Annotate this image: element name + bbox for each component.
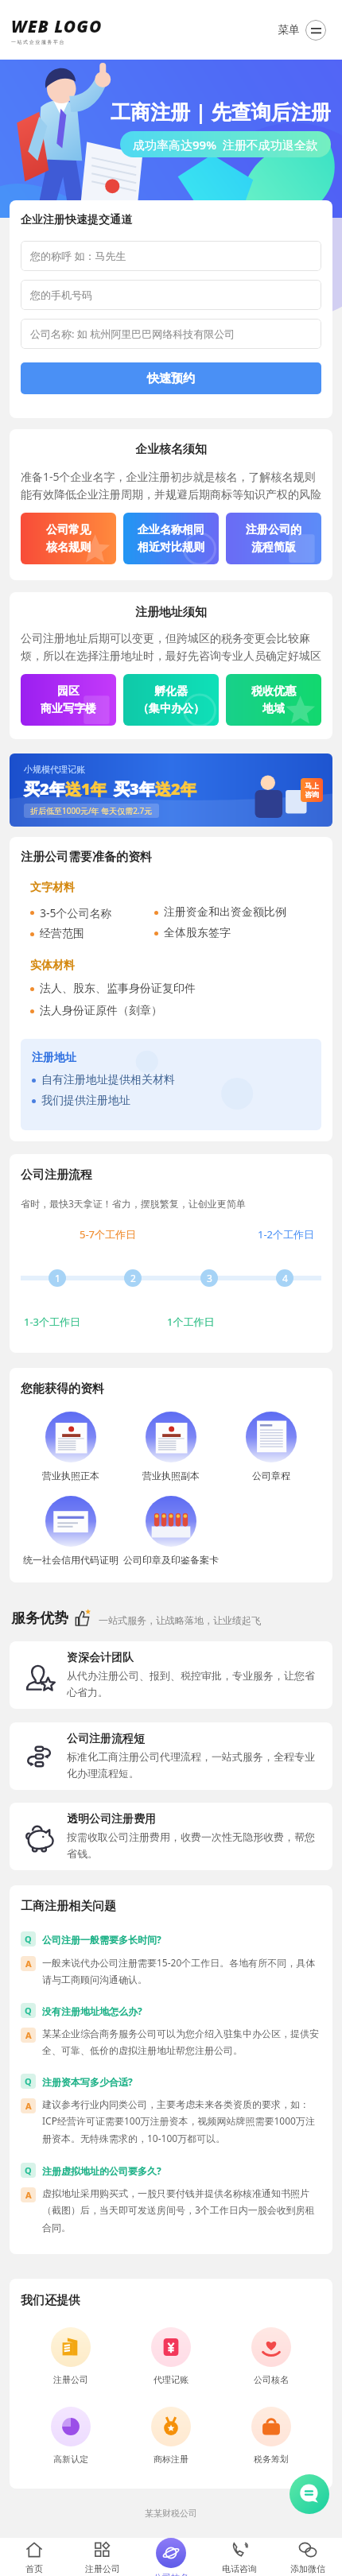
button[interactable]: 税收优惠: [226, 674, 321, 726]
staticText: 一 站 式 企 业 服 务 平 台: [11, 39, 64, 45]
staticText: 公司核名: [154, 2572, 188, 2576]
staticText: 企业核名须知: [135, 442, 207, 457]
button[interactable]: Q: [21, 2003, 321, 2018]
button[interactable]: 小规模代理记账: [10, 753, 332, 827]
staticText: 我们还提供: [21, 2293, 80, 2308]
staticText: 商标注册: [154, 2454, 188, 2465]
staticText: 1-3个工作日: [24, 1315, 81, 1329]
staticText: 从代办注册公司、报到、税控审批，专业服务，让您省心省力。: [67, 1669, 321, 1699]
button[interactable]: 电话咨询: [205, 2538, 274, 2576]
button[interactable]: 园区: [21, 674, 116, 726]
button[interactable]: Q: [21, 2074, 321, 2089]
staticText: 文字材料: [30, 881, 75, 895]
staticText: 公司常见: [46, 523, 91, 537]
button[interactable]: 在线咨询: [290, 2474, 329, 2514]
staticText: 3: [207, 1272, 212, 1284]
staticText: 没有注册地址地怎么办?: [42, 2005, 142, 2017]
button[interactable]: Q: [21, 2163, 321, 2178]
staticText: 首页: [25, 2563, 43, 2574]
staticText: A: [25, 2029, 32, 2041]
button[interactable]: 资深会计团队: [10, 1641, 332, 1709]
button[interactable]: 注册公司的: [226, 513, 321, 564]
staticText: 核名规则: [46, 540, 91, 555]
button[interactable]: 公司印章及印鉴备案卡: [121, 1496, 221, 1566]
button[interactable]: 税务筹划: [221, 2407, 321, 2465]
button[interactable]: 您的手机号码: [21, 280, 321, 310]
staticText: 税务筹划: [254, 2454, 289, 2465]
staticText: 马上: [305, 781, 319, 790]
button[interactable]: 公司注册流程短: [10, 1722, 332, 1790]
staticText: 公司核名: [254, 2374, 289, 2385]
button[interactable]: 企业名称相同: [123, 513, 219, 564]
staticText: 注册公司: [53, 2374, 88, 2385]
button[interactable]: 商标注册: [121, 2407, 221, 2465]
button[interactable]: 孵化器: [123, 674, 219, 726]
button[interactable]: 透明公司注册费用: [10, 1803, 332, 1870]
staticText: 税收优惠: [251, 684, 296, 699]
staticText: 您能获得的资料: [21, 1381, 104, 1396]
staticText: 1-2个工作日: [258, 1227, 315, 1242]
staticText: 经营范围: [40, 927, 84, 941]
staticText: 商业写字楼: [41, 702, 96, 716]
staticText: 小规模代理记账: [24, 764, 85, 775]
staticText: 省时，最快3天拿证！省力，摆脱繁复，让创业更简单: [21, 1197, 246, 1210]
button[interactable]: 首页: [0, 2538, 68, 2576]
button[interactable]: 快速预约: [21, 362, 321, 394]
button[interactable]: 代理记账: [121, 2327, 221, 2385]
staticText: 注册虚拟地址的公司要多久?: [42, 2164, 161, 2177]
button[interactable]: 公司章程: [221, 1412, 321, 1482]
button[interactable]: Q: [21, 1931, 321, 1947]
button[interactable]: 您的称呼 如：马先生: [21, 241, 321, 271]
staticText: 全体股东签字: [164, 926, 231, 940]
staticText: 某某财税公司: [145, 2508, 197, 2519]
staticText: 公司注册一般需要多长时间?: [42, 1933, 161, 1946]
button[interactable]: 公司名称: 如 杭州阿里巴巴网络科技有限公司: [21, 319, 321, 349]
staticText: 买3年: [114, 778, 155, 800]
staticText: 营业执照正本: [42, 1470, 99, 1482]
staticText: 资深会计团队: [67, 1651, 134, 1665]
staticText: 您的手机号码: [30, 289, 92, 301]
staticText: 建议参考行业内同类公司，主要考虑未来各类资质的要求，如：ICP经营许可证需要10…: [42, 2098, 321, 2145]
other: 菜单: [305, 20, 326, 41]
staticText: 送1年: [65, 778, 107, 800]
staticText: 虚拟地址采用购买式，一股只要付钱并提供名称核准通知书照片（截图）后，当天即可发送…: [42, 2187, 321, 2233]
staticText: 5-7个工作日: [80, 1227, 137, 1242]
button[interactable]: 公司核名: [221, 2327, 321, 2385]
staticText: 流程简版: [251, 540, 296, 555]
button[interactable]: 统一社会信用代码证明: [21, 1496, 121, 1566]
staticText: 公司注册流程: [21, 1168, 92, 1183]
staticText: 相近对比规则: [138, 540, 204, 555]
staticText: 添加微信: [290, 2563, 325, 2574]
staticText: 2: [130, 1272, 136, 1284]
staticText: 成功率高达99% 注册不成功退全款: [133, 137, 318, 153]
staticText: 电话咨询: [222, 2563, 257, 2574]
staticText: 地域: [262, 702, 285, 716]
button[interactable]: 公司核名: [137, 2538, 205, 2576]
staticText: 注册公司需要准备的资料: [21, 850, 152, 865]
staticText: 自有注册地址提供相关材料: [41, 1073, 175, 1087]
button[interactable]: 注册公司: [68, 2538, 137, 2576]
button[interactable]: 高新认定: [21, 2407, 121, 2465]
staticText: 法人、股东、监事身份证复印件: [40, 982, 196, 996]
staticText: 营业执照副本: [142, 1470, 200, 1482]
button[interactable]: 注册公司: [21, 2327, 121, 2385]
button[interactable]: 营业执照副本: [121, 1412, 221, 1482]
staticText: 注册地址: [32, 1051, 76, 1065]
button[interactable]: 马上: [305, 781, 319, 799]
button[interactable]: 公司常见: [21, 513, 116, 564]
staticText: 3-5个公司名称: [40, 905, 112, 920]
staticText: 工商注册相关问题: [21, 1899, 116, 1914]
staticText: Q: [25, 2164, 32, 2176]
button[interactable]: 菜单: [274, 17, 329, 44]
staticText: 园区: [57, 684, 80, 699]
staticText: 菜单: [278, 23, 300, 37]
staticText: 服务优势: [11, 1610, 68, 1628]
staticText: 送2年: [155, 778, 196, 800]
staticText: 工商注册 | 先查询后注册: [111, 98, 331, 125]
button[interactable]: 营业执照正本: [21, 1412, 121, 1482]
button[interactable]: 添加微信: [274, 2538, 342, 2576]
staticText: 1: [55, 1272, 60, 1284]
staticText: 注册公司的: [246, 523, 301, 537]
staticText: A: [25, 1958, 32, 1970]
staticText: 注册资金和出资金额比例: [164, 905, 286, 920]
